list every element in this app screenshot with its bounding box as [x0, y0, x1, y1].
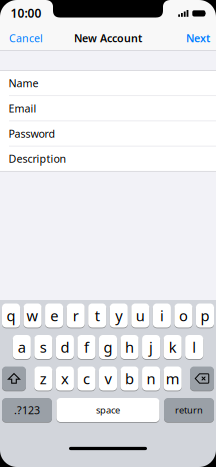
staticText: q [6, 306, 15, 325]
button[interactable]: return [164, 397, 214, 422]
button[interactable]: y [110, 303, 128, 328]
staticText: a [18, 337, 26, 357]
staticText: w [27, 306, 39, 325]
button[interactable]: Name [0, 70, 216, 96]
button[interactable]: h [120, 334, 139, 359]
staticText: z [40, 369, 47, 388]
staticText: Cancel [9, 31, 43, 45]
button[interactable]: v [99, 366, 117, 391]
button[interactable]: q [2, 303, 20, 328]
button[interactable]: c [77, 366, 95, 391]
staticText: New Account [74, 31, 142, 45]
button[interactable]: o [174, 303, 192, 328]
button[interactable]: e [45, 303, 63, 328]
button[interactable]: p [196, 303, 214, 328]
staticText: v [104, 369, 111, 388]
staticText: j [149, 337, 153, 357]
button[interactable]: z [34, 366, 52, 391]
staticText: g [103, 337, 112, 357]
staticText: Name [9, 76, 39, 90]
button[interactable]: l [185, 334, 203, 359]
staticText: i [160, 306, 164, 325]
staticText: b [125, 369, 134, 388]
button[interactable]: Email [0, 96, 216, 121]
staticText: t [95, 306, 100, 325]
staticText: space [96, 404, 120, 416]
button[interactable]: s [34, 334, 52, 359]
staticText: l [192, 337, 196, 357]
staticText: n [147, 369, 156, 388]
staticText: r [73, 306, 79, 325]
button[interactable]: Password [0, 121, 216, 146]
button[interactable]: d [56, 334, 74, 359]
button[interactable]: t [88, 303, 106, 328]
staticText: e [50, 306, 58, 325]
staticText: x [61, 369, 69, 388]
button[interactable]: Description [0, 146, 216, 171]
staticText: h [125, 337, 134, 357]
staticText: Description [9, 152, 67, 166]
button[interactable]: x [56, 366, 74, 391]
button[interactable]: m [164, 366, 182, 391]
staticText: f [84, 337, 89, 357]
staticText: c [83, 369, 90, 388]
staticText: o [179, 306, 188, 325]
button[interactable]: r [67, 303, 85, 328]
button[interactable]: space [56, 397, 159, 422]
button[interactable]: .?123 [2, 397, 52, 422]
staticText: u [136, 306, 145, 325]
staticText: k [169, 337, 177, 357]
staticText: 10:00 [10, 5, 41, 21]
button[interactable]: a [13, 334, 31, 359]
staticText: .?123 [14, 403, 40, 417]
button[interactable]: Cancel [0, 25, 43, 50]
staticText: return [175, 404, 203, 416]
button[interactable]: Next [186, 25, 216, 50]
button[interactable]: Delete [190, 366, 214, 391]
staticText: y [115, 306, 122, 325]
staticText: d [60, 337, 69, 357]
button[interactable]: k [164, 334, 182, 359]
button[interactable]: g [99, 334, 117, 359]
button[interactable]: i [153, 303, 171, 328]
staticText: Next [186, 31, 210, 45]
button[interactable]: j [142, 334, 160, 359]
staticText: Email [9, 101, 37, 115]
button[interactable]: n [142, 366, 160, 391]
staticText: m [166, 369, 180, 388]
button[interactable]: u [131, 303, 149, 328]
staticText: p [200, 306, 209, 325]
button[interactable]: b [120, 366, 139, 391]
button[interactable]: Shift [2, 366, 26, 391]
button[interactable]: w [23, 303, 42, 328]
staticText: Password [9, 126, 56, 141]
staticText: s [40, 337, 47, 357]
button[interactable]: f [77, 334, 95, 359]
